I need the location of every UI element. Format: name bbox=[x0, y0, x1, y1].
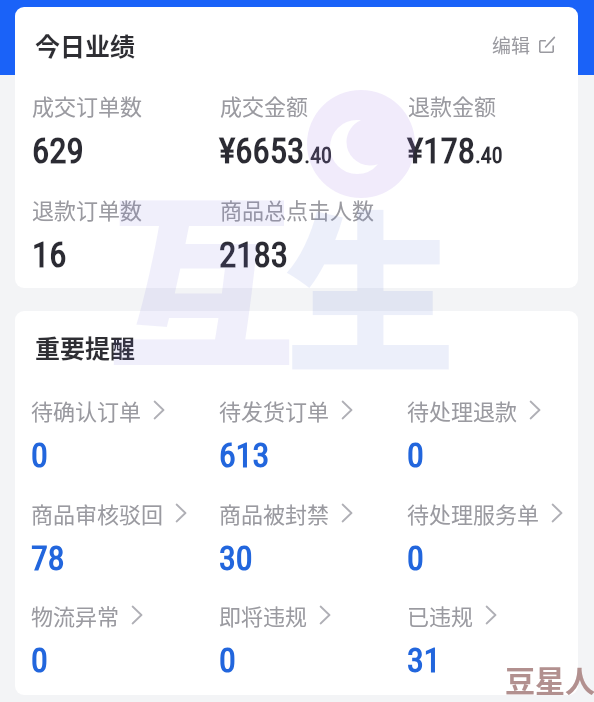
staticText: 商品被封禁 bbox=[219, 497, 330, 529]
staticText: 31 bbox=[407, 640, 441, 680]
button[interactable]: 待处理服务单 bbox=[407, 497, 578, 578]
staticText: 商品审核驳回 bbox=[31, 497, 164, 529]
staticText: 613 bbox=[219, 435, 270, 475]
staticText: 0 bbox=[219, 640, 236, 680]
staticText: 生 bbox=[284, 157, 456, 406]
button[interactable]: 待确认订单 bbox=[31, 394, 205, 475]
staticText: 即将违规 bbox=[219, 599, 308, 631]
staticText: 重要提醒 bbox=[35, 329, 136, 365]
button[interactable]: 商品审核驳回 bbox=[31, 497, 205, 578]
staticText: 豆星人 bbox=[505, 657, 594, 700]
button[interactable]: 即将违规 bbox=[219, 599, 393, 680]
staticText: 成交订单数 bbox=[32, 89, 143, 121]
button[interactable]: 待发货订单 bbox=[219, 394, 393, 475]
staticText: 今日业绩 bbox=[35, 27, 136, 63]
staticText: 629 bbox=[32, 131, 84, 172]
staticText: 0 bbox=[407, 435, 424, 475]
staticText: 商品总点击人数 bbox=[220, 193, 375, 225]
button[interactable]: 编辑 bbox=[492, 31, 554, 59]
staticText: 成交金额 bbox=[220, 89, 309, 121]
staticText: 待处理服务单 bbox=[407, 497, 540, 529]
button[interactable]: 物流异常 bbox=[31, 599, 205, 680]
staticText: 待处理退款 bbox=[407, 394, 518, 426]
button[interactable]: 商品被封禁 bbox=[219, 497, 393, 578]
staticText: 物流异常 bbox=[31, 599, 120, 631]
staticText: 互 bbox=[106, 134, 297, 409]
staticText: ¥6653.40 bbox=[219, 131, 332, 172]
staticText: 已违规 bbox=[407, 599, 474, 631]
staticText: 2183 bbox=[219, 235, 289, 276]
staticText: 0 bbox=[31, 435, 48, 475]
staticText: 退款金额 bbox=[408, 89, 497, 121]
staticText: 78 bbox=[31, 538, 65, 578]
staticText: 16 bbox=[32, 235, 67, 276]
staticText: 待发货订单 bbox=[219, 394, 330, 426]
button[interactable]: 已违规 bbox=[407, 599, 578, 680]
staticText: 编辑 bbox=[492, 31, 531, 59]
staticText: 0 bbox=[407, 538, 424, 578]
staticText: ¥178.40 bbox=[407, 131, 503, 172]
button[interactable]: 待处理退款 bbox=[407, 394, 578, 475]
staticText: 0 bbox=[31, 640, 48, 680]
staticText: 待确认订单 bbox=[31, 394, 142, 426]
staticText: 退款订单数 bbox=[32, 193, 143, 225]
staticText: 30 bbox=[219, 538, 253, 578]
